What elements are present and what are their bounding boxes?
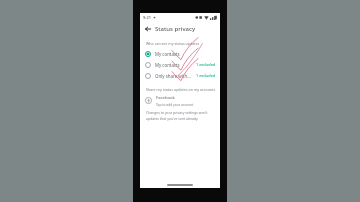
staticText: Status privacy bbox=[155, 25, 196, 33]
staticText: My contacts bbox=[155, 51, 180, 57]
staticText: Share my status updates on my accounts bbox=[146, 87, 216, 92]
staticText: Who can see my status updates bbox=[146, 41, 200, 46]
staticText: Only share with... bbox=[155, 73, 191, 79]
button[interactable]: My contacts except... bbox=[140, 59, 220, 70]
button[interactable]: My contacts bbox=[140, 48, 220, 59]
staticText: My contacts except... bbox=[155, 62, 194, 68]
button[interactable]: Only share with... bbox=[140, 70, 220, 81]
staticText: updates that you've sent already bbox=[146, 116, 198, 121]
button[interactable]: Facebook bbox=[140, 94, 220, 107]
staticText: 1 excluded bbox=[196, 73, 216, 78]
button[interactable]: Back bbox=[143, 24, 153, 34]
staticText: 9:21 bbox=[143, 15, 151, 20]
staticText: Tap to add your account bbox=[156, 102, 194, 106]
staticText: Facebook bbox=[156, 95, 175, 101]
staticText: Changes to your privacy settings won't a… bbox=[146, 110, 214, 115]
staticText: 1 excluded bbox=[196, 62, 216, 67]
